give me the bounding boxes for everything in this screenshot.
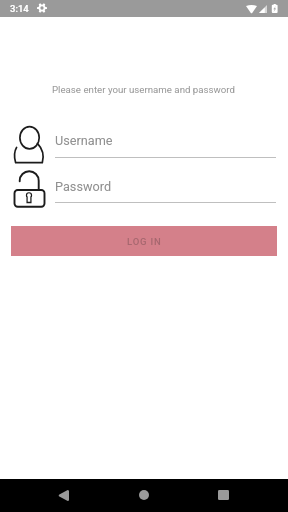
- button[interactable]: Home: [114, 479, 174, 512]
- staticText: Password: [55, 179, 112, 194]
- button[interactable]: Back: [34, 479, 94, 512]
- staticText: LOG IN: [127, 236, 162, 247]
- staticText: 3:14: [10, 3, 29, 14]
- staticText: Please enter your username and password: [52, 84, 236, 95]
- staticText: Username: [55, 133, 113, 148]
- button[interactable]: LOG IN: [11, 226, 277, 256]
- button[interactable]: Recent apps: [193, 479, 253, 512]
